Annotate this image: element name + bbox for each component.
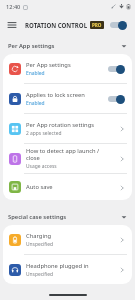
staticText: ROTATION CONTROL [25, 21, 88, 29]
staticText: 12:40 [6, 3, 21, 11]
button[interactable]: Toggle Per App settings [105, 61, 128, 77]
staticText: Charging [26, 232, 52, 240]
button[interactable]: Auto save [3, 174, 132, 200]
button[interactable]: Per App settings [3, 54, 132, 83]
button[interactable]: Headphone plugged in [3, 255, 132, 284]
staticText: Special case settings [8, 213, 67, 221]
staticText: PRO [92, 22, 102, 28]
staticText: Auto save [26, 183, 53, 191]
staticText: Per App rotation settings [26, 121, 94, 129]
staticText: Unspecified [26, 271, 54, 278]
staticText: 2 apps selected [26, 130, 62, 137]
staticText: Per App settings [26, 61, 71, 69]
staticText: Per App settings [8, 42, 55, 50]
staticText: Enabled [26, 70, 45, 77]
staticText: Usage access [26, 163, 57, 170]
staticText: How to detect app launch / close [26, 147, 113, 162]
button[interactable]: Special case settings [0, 208, 135, 225]
button[interactable]: Per App settings [0, 37, 135, 54]
button[interactable]: Master rotation toggle [107, 17, 130, 33]
button[interactable]: Open navigation menu [5, 18, 19, 32]
staticText: Enabled [26, 100, 45, 107]
button[interactable]: Charging [3, 225, 132, 254]
button[interactable]: Per App rotation settings [3, 114, 132, 143]
staticText: Unspecified [26, 241, 54, 248]
button[interactable]: Toggle Applies to lock screen [105, 91, 128, 107]
button[interactable]: How to detect app launch / close [3, 144, 132, 173]
staticText: Headphone plugged in [26, 262, 89, 270]
button[interactable]: Applies to lock screen [3, 84, 132, 113]
staticText: Applies to lock screen [26, 91, 85, 99]
